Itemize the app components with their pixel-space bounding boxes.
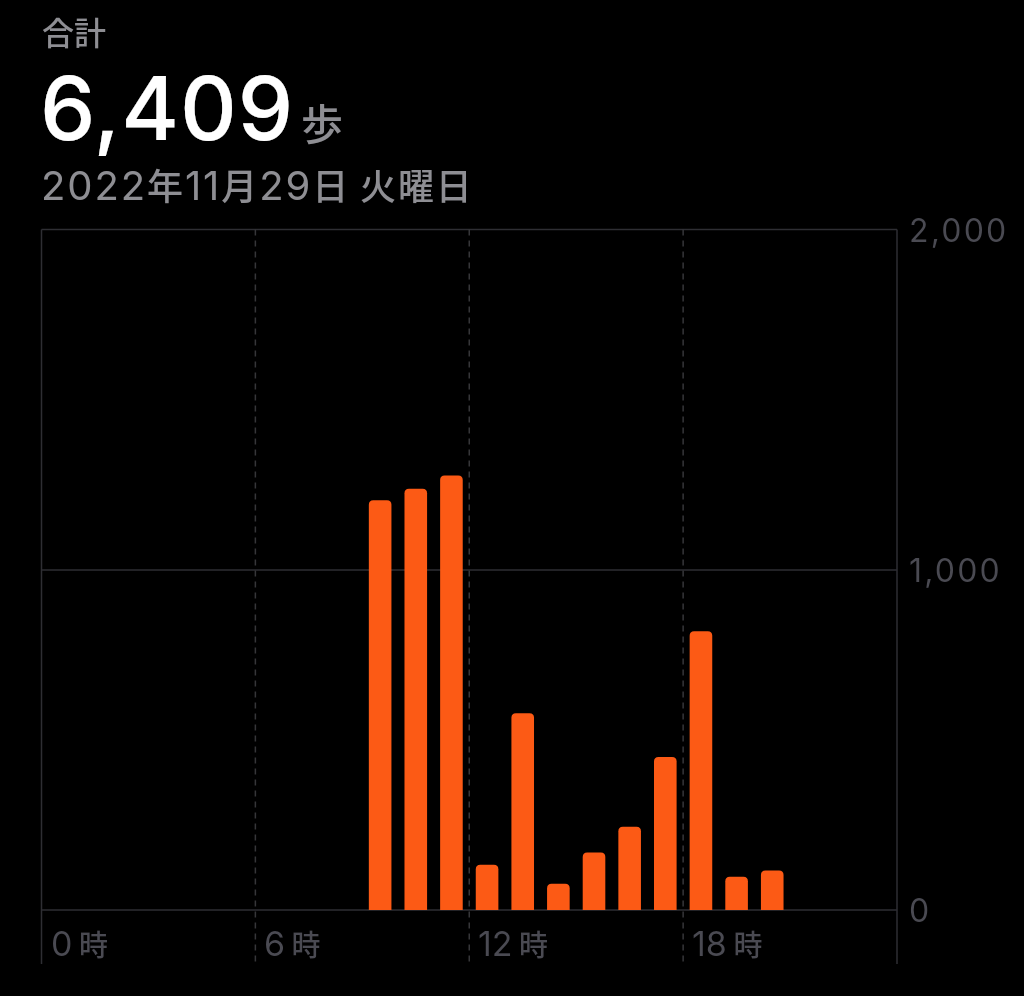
staticText: 1,000 bbox=[909, 551, 1002, 590]
staticText: 2022年11月29日 火曜日 bbox=[41, 158, 474, 210]
button[interactable]: 合計 bbox=[42, 8, 107, 54]
button[interactable]: Hourly step chart bbox=[42, 230, 898, 911]
staticText: 6 時 bbox=[264, 922, 321, 964]
staticText: 合計 bbox=[42, 8, 107, 54]
button[interactable]: 6,409 bbox=[40, 55, 344, 161]
staticText: 歩 bbox=[301, 91, 344, 152]
staticText: 12 時 bbox=[478, 922, 549, 964]
staticText: 0 時 bbox=[51, 922, 108, 964]
staticText: 6,409 bbox=[40, 55, 295, 161]
staticText: 2,000 bbox=[909, 211, 1009, 250]
staticText: 18 時 bbox=[692, 922, 763, 964]
button[interactable]: 2022年11月29日 火曜日 bbox=[41, 158, 474, 210]
staticText: 0 bbox=[909, 891, 932, 930]
